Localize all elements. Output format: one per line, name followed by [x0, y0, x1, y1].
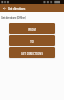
button[interactable]: Back — [2, 6, 6, 10]
staticText: Get directions — [8, 7, 26, 11]
staticText: Get directions (Offline) — [1, 16, 26, 20]
button[interactable]: TO — [9, 35, 55, 46]
staticText: GET DIRECTIONS — [21, 52, 43, 55]
button[interactable]: FROM — [9, 23, 55, 34]
button[interactable]: GET DIRECTIONS — [9, 47, 55, 58]
staticText: FROM — [28, 28, 36, 31]
staticText: TO — [30, 40, 34, 43]
